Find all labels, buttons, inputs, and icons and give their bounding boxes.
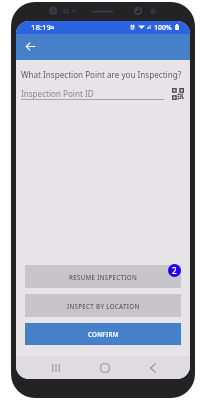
staticText: INSPECT BY LOCATION (67, 302, 140, 310)
staticText: 100% (154, 23, 172, 32)
button[interactable]: Scan QR code (171, 87, 185, 101)
staticText: 18:19 (31, 22, 51, 33)
button[interactable]: Home (96, 356, 114, 379)
staticText: RESUME INSPECTION (69, 273, 138, 281)
staticText: CONFIRM (88, 330, 119, 338)
staticText: 2 (172, 265, 177, 276)
staticText: Inspection Point ID (21, 88, 94, 99)
staticText: What Inspection Point are you Inspecting… (21, 69, 182, 80)
button[interactable]: Recents (47, 356, 65, 379)
button[interactable]: Back (20, 36, 41, 57)
button[interactable]: INSPECT BY LOCATION (25, 294, 181, 317)
button[interactable]: CONFIRM (25, 323, 181, 345)
button[interactable]: RESUME INSPECTION (25, 265, 181, 288)
button[interactable]: Back (144, 356, 162, 379)
